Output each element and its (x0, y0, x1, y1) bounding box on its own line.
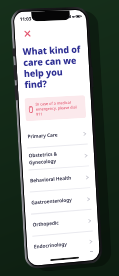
staticText: What kind of care can we help you find? (22, 43, 84, 90)
staticText: Obstetrics & Gynecology (28, 149, 85, 166)
staticText: Gastroenterology (31, 195, 87, 206)
button[interactable]: Gastroenterology (24, 188, 97, 214)
staticText: Endocrinology (34, 239, 90, 251)
button[interactable]: Orthopedic (25, 209, 98, 236)
staticText: 11:03 (20, 15, 32, 22)
button[interactable]: Endocrinology (26, 231, 99, 257)
staticText: Orthopedic (32, 217, 88, 229)
button[interactable]: Behavioral Health (23, 166, 96, 192)
staticText: Primary Care (27, 130, 84, 140)
staticText: Behavioral Health (30, 174, 86, 184)
staticText: In case of a medical emergency, please d… (35, 99, 82, 117)
button[interactable]: Primary Care (20, 122, 93, 148)
button[interactable]: Obstetrics & Gynecology (21, 144, 95, 170)
button[interactable]: Close (20, 26, 34, 40)
button[interactable]: In case of a medical emergency, please d… (24, 95, 86, 121)
